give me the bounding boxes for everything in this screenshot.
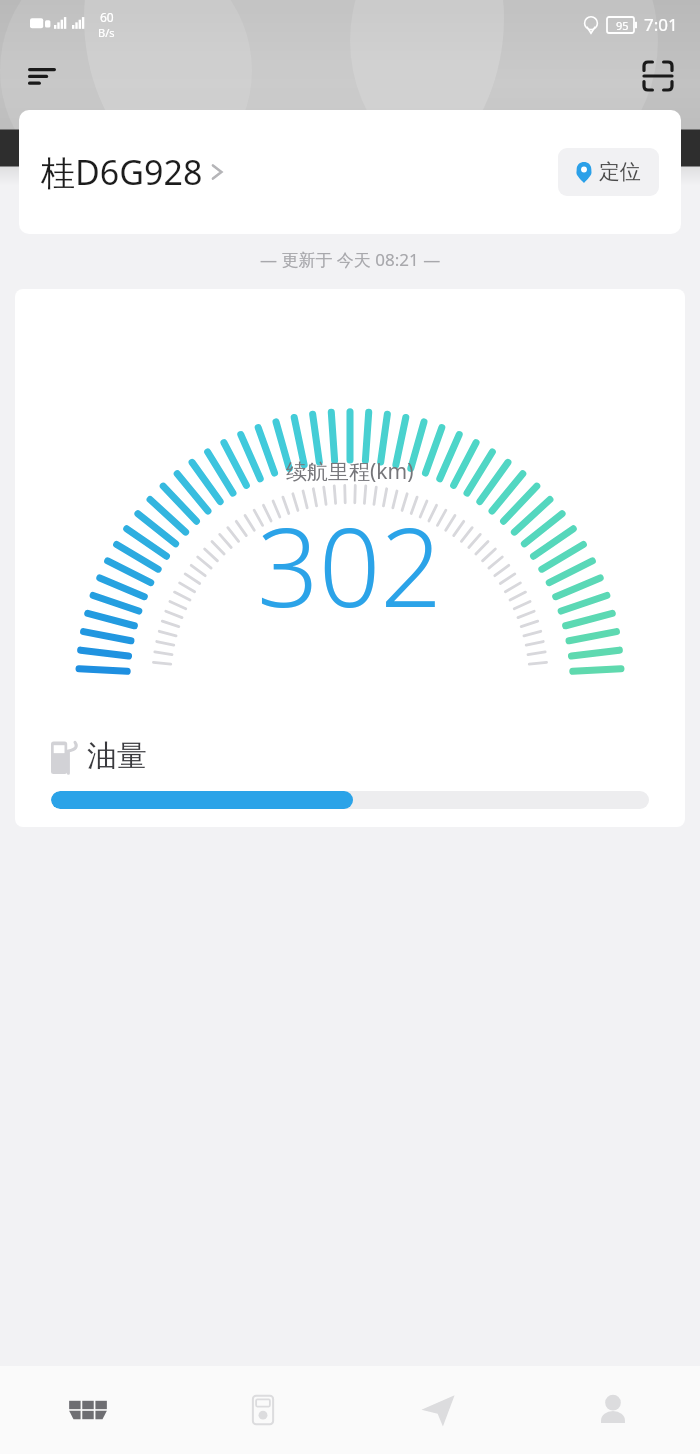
button[interactable]: Menu — [14, 48, 70, 104]
staticText: 定位 — [599, 159, 641, 185]
button[interactable]: Vehicle — [0, 1366, 175, 1454]
button[interactable]: Profile — [525, 1366, 700, 1454]
staticText: 302 — [257, 492, 443, 639]
staticText: — 更新于 今天 08:21 — — [260, 248, 441, 271]
button[interactable]: 定位 — [558, 148, 659, 196]
staticText: 7:01 — [644, 13, 678, 36]
staticText: B/s — [98, 25, 115, 40]
button[interactable]: Remote — [175, 1366, 350, 1454]
button[interactable]: Scan — [630, 48, 686, 104]
staticText: 95 — [616, 18, 629, 33]
staticText: 桂D6G928 — [41, 149, 203, 195]
staticText: 油量 — [87, 737, 147, 775]
staticText: 60 — [100, 9, 114, 25]
button[interactable]: Navigate — [350, 1366, 525, 1454]
staticText: 续航里程(km) — [286, 457, 414, 486]
button[interactable]: 桂D6G928 — [41, 149, 558, 195]
